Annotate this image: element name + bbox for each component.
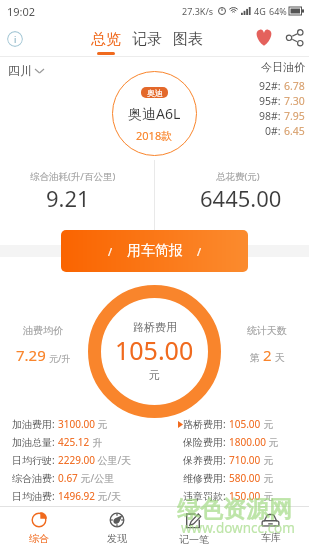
staticText: 2 [263, 345, 272, 365]
staticText: 保养费用: [183, 453, 229, 467]
staticText: / [197, 244, 202, 259]
staticText: 元 [261, 453, 274, 467]
staticText: 记录 [132, 30, 162, 49]
staticText: 27.3K/s [182, 5, 214, 17]
staticText: 记一笔 [179, 533, 209, 546]
staticText: 元/升 [49, 352, 71, 364]
staticText: 升 [90, 435, 103, 449]
button[interactable]: 车库 [232, 507, 309, 550]
staticText: 四川 [8, 63, 32, 78]
staticText: 元/公里 [78, 471, 115, 485]
staticText: 0.67 [58, 471, 78, 485]
staticText: 元 [95, 417, 108, 431]
staticText: 天 [275, 351, 285, 364]
staticText: 7.29 [16, 345, 46, 365]
staticText: 7.30 [284, 94, 305, 108]
staticText: 车库 [261, 531, 281, 544]
staticText: 路桥费用 [133, 320, 177, 334]
button[interactable]: / [61, 230, 248, 272]
staticText: 保险费用: [183, 435, 229, 449]
staticText: 绿色资源网 [177, 495, 292, 524]
staticText: 日均油费: [12, 489, 58, 503]
staticText: 64% [269, 5, 287, 17]
staticText: 105.00 [115, 333, 194, 367]
staticText: 元 [266, 435, 279, 449]
staticText: 95#: [259, 94, 284, 108]
staticText: 路桥费用: [183, 417, 229, 431]
button[interactable]: 综合 [0, 507, 78, 550]
button[interactable]: 奥迪 [112, 71, 197, 156]
staticText: 奥迪 [147, 88, 163, 98]
staticText: 92#: [259, 79, 284, 93]
staticText: 425.12 [58, 435, 90, 449]
button[interactable]: 发现 [78, 507, 155, 550]
staticText: 日均行驶: [12, 453, 58, 467]
staticText: 总花费(元) [216, 170, 260, 183]
button[interactable]: 总览 [91, 30, 121, 55]
button[interactable]: 四川 [8, 63, 44, 78]
button[interactable]: Info [7, 31, 23, 47]
staticText: 2229.00 [58, 453, 95, 467]
staticText: 元 [149, 368, 160, 382]
staticText: 7.95 [284, 109, 305, 123]
staticText: 4G [254, 5, 266, 17]
staticText: 150.00 [229, 489, 261, 503]
staticText: 0#: [265, 124, 284, 138]
staticText: 710.00 [229, 453, 261, 467]
staticText: 元 [261, 489, 274, 503]
staticText: i [14, 33, 17, 45]
staticText: 综合 [29, 532, 49, 545]
staticText: 6.78 [284, 79, 305, 93]
staticText: 总览 [91, 30, 121, 49]
staticText: 6445.00 [200, 183, 282, 213]
staticText: 综合油费: [12, 471, 58, 485]
staticText: 奥迪A6L [128, 104, 181, 123]
staticText: 1496.92 [58, 489, 95, 503]
staticText: 维修费用: [183, 471, 229, 485]
button[interactable]: Favorite [255, 29, 273, 46]
staticText: 1800.00 [229, 435, 266, 449]
staticText: / [108, 244, 113, 259]
staticText: 公里/天 [95, 453, 132, 467]
staticText: 违章罚款: [183, 489, 229, 503]
button[interactable]: 记录 [132, 30, 162, 55]
staticText: 加油总量: [12, 435, 58, 449]
staticText: 综合油耗(升/百公里) [30, 170, 116, 183]
staticText: 2018款 [136, 128, 173, 143]
staticText: www.downcc.com [181, 519, 295, 537]
staticText: 统计天数 [247, 324, 287, 337]
staticText: 98#: [259, 109, 284, 123]
staticText: 图表 [173, 30, 203, 49]
button[interactable]: 图表 [173, 30, 203, 55]
staticText: 元 [261, 471, 274, 485]
staticText: 元/天 [95, 489, 122, 503]
button[interactable]: Share [286, 30, 303, 45]
button[interactable]: 记一笔 [155, 507, 232, 550]
staticText: 今日油价 [261, 60, 305, 74]
staticText: 19:02 [7, 4, 36, 19]
staticText: 用车简报 [127, 242, 183, 260]
staticText: 3100.00 [58, 417, 95, 431]
staticText: 加油费用: [12, 417, 58, 431]
staticText: 105.00 [229, 417, 261, 431]
staticText: 发现 [107, 532, 127, 545]
staticText: 9.21 [46, 183, 90, 213]
staticText: 油费均价 [23, 324, 63, 337]
staticText: 第 [250, 351, 260, 364]
staticText: 580.00 [229, 471, 261, 485]
staticText: 6.45 [284, 124, 305, 138]
staticText: 元 [261, 417, 274, 431]
